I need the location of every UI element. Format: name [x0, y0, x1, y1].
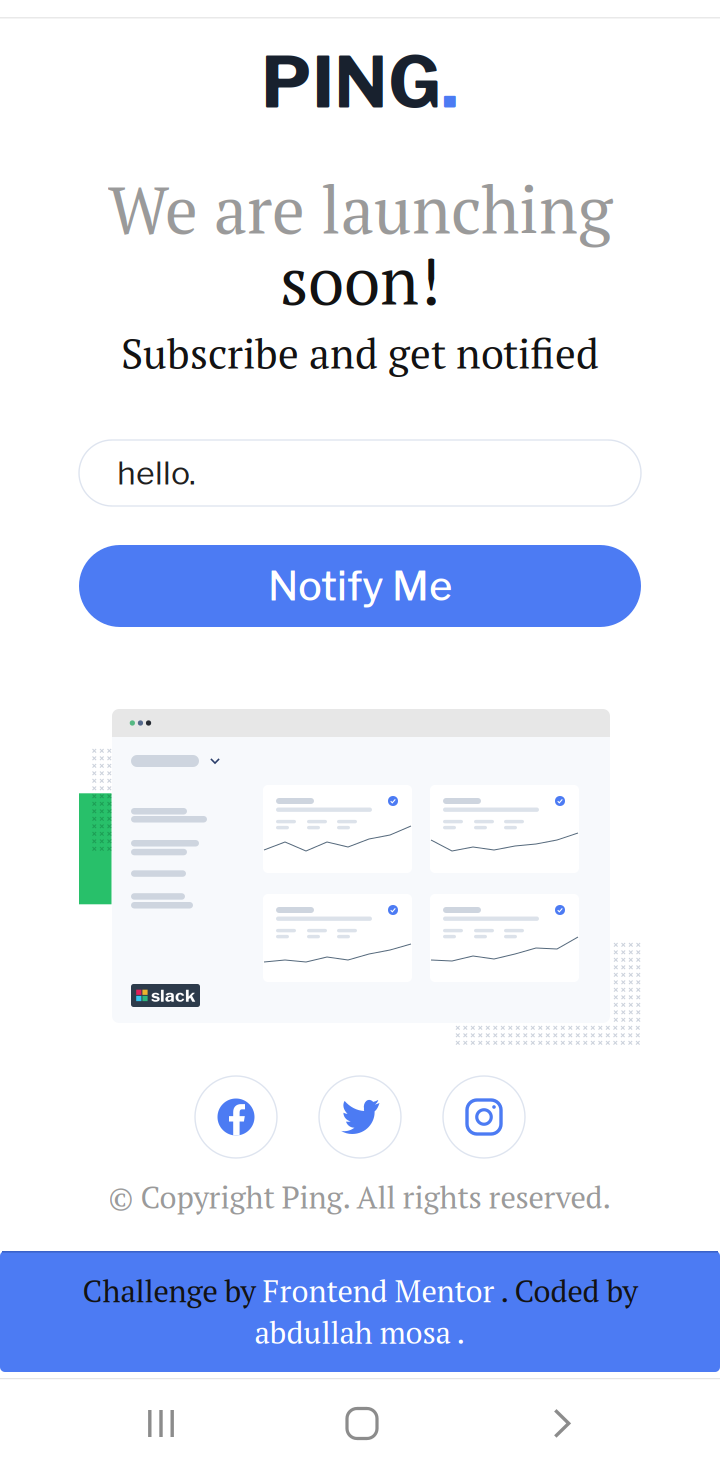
staticText: . Coded by — [494, 1270, 637, 1311]
button[interactable]: abdullah mosa . — [254, 1312, 465, 1353]
staticText: hello. — [117, 454, 196, 492]
staticText: slack — [151, 985, 195, 1006]
staticText: . — [441, 39, 459, 125]
button[interactable]: Frontend Mentor — [262, 1270, 494, 1311]
staticText: Frontend Mentor — [262, 1270, 494, 1311]
staticText: © Copyright Ping. All rights reserved. — [108, 1177, 611, 1217]
staticText: Subscribe and get notified — [121, 326, 599, 380]
button[interactable]: Home — [302, 1379, 422, 1467]
button[interactable]: Instagram — [442, 1075, 526, 1159]
staticText: soon! — [280, 237, 440, 323]
button[interactable]: Recent apps — [101, 1379, 221, 1467]
staticText: abdullah mosa . — [254, 1312, 465, 1353]
staticText: Notify Me — [268, 562, 452, 610]
button[interactable]: Back — [502, 1379, 622, 1467]
staticText: PING — [261, 39, 441, 125]
button[interactable]: Notify Me — [79, 545, 641, 627]
staticText: We are launching — [108, 166, 612, 252]
button[interactable]: Facebook — [194, 1075, 278, 1159]
button[interactable]: Twitter — [318, 1075, 402, 1159]
staticText: Challenge by — [82, 1270, 262, 1311]
